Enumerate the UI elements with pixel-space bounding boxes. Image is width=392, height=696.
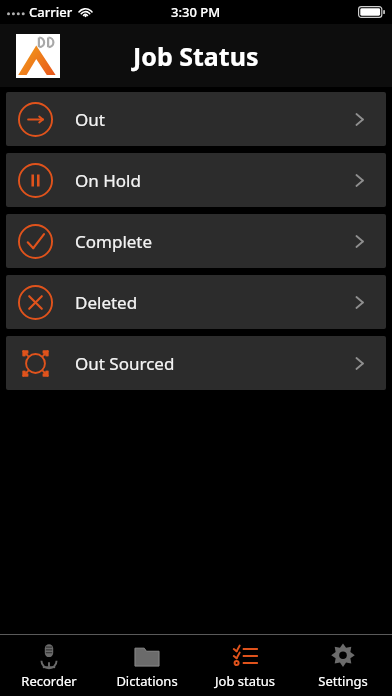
- button[interactable]: Deleted: [6, 275, 386, 329]
- staticText: Complete: [75, 230, 153, 253]
- button[interactable]: Settings: [294, 635, 392, 696]
- staticText: Deleted: [75, 291, 138, 314]
- button[interactable]: App logo: [16, 34, 60, 78]
- button[interactable]: Dictations: [98, 635, 196, 696]
- staticText: 3:30 PM: [171, 3, 221, 21]
- staticText: Recorder: [21, 672, 77, 690]
- button[interactable]: On Hold: [6, 153, 386, 207]
- staticText: Settings: [318, 672, 368, 690]
- button[interactable]: Job status: [196, 635, 294, 696]
- staticText: Job Status: [133, 39, 259, 73]
- button[interactable]: Out Sourced: [6, 336, 386, 390]
- button[interactable]: Complete: [6, 214, 386, 268]
- staticText: On Hold: [75, 169, 141, 192]
- staticText: Out: [75, 108, 105, 131]
- staticText: Carrier: [29, 3, 73, 21]
- staticText: Out Sourced: [75, 352, 175, 375]
- button[interactable]: Recorder: [0, 635, 98, 696]
- button[interactable]: Out: [6, 92, 386, 146]
- staticText: Dictations: [116, 672, 178, 690]
- staticText: Job status: [215, 672, 275, 690]
